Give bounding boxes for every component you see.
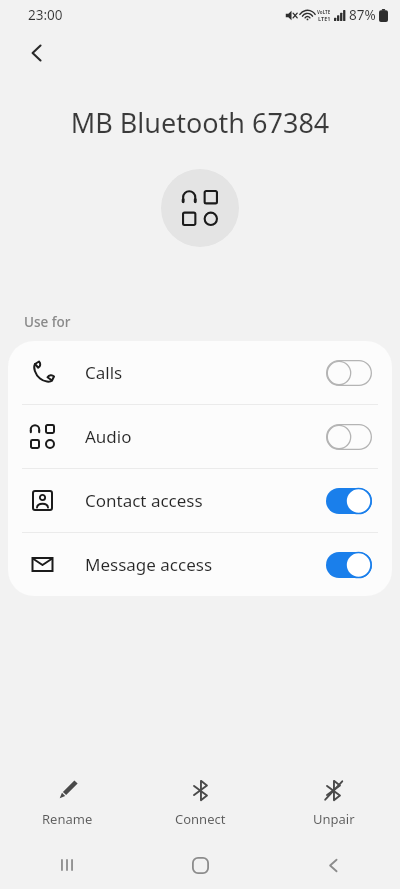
button[interactable]: Rename	[0, 773, 134, 834]
button[interactable]: Back	[267, 841, 400, 889]
button[interactable]: Connect	[134, 773, 267, 834]
staticText: Rename	[42, 810, 93, 828]
button[interactable]: On	[326, 552, 372, 578]
button[interactable]: Unpair	[267, 773, 400, 834]
staticText: Use for	[24, 313, 71, 331]
staticText: LTE1	[318, 15, 331, 22]
button[interactable]: Home	[134, 841, 267, 889]
staticText: VoLTE	[317, 9, 331, 15]
staticText: Calls	[85, 361, 326, 384]
staticText: Connect	[175, 810, 226, 828]
button[interactable]: Off	[326, 424, 372, 450]
staticText: MB Bluetooth 67384	[16, 104, 384, 141]
button[interactable]: Back	[14, 30, 60, 76]
staticText: Unpair	[313, 810, 355, 828]
button[interactable]: Contact access	[8, 469, 392, 532]
button[interactable]: Recents	[0, 841, 134, 889]
button[interactable]: Off	[326, 360, 372, 386]
button[interactable]: Message access	[8, 533, 392, 596]
staticText: 87%	[349, 6, 376, 24]
staticText: 23:00	[28, 6, 63, 24]
staticText: Audio	[85, 425, 326, 448]
staticText: Message access	[85, 553, 326, 576]
staticText: Contact access	[85, 489, 326, 512]
button[interactable]: Audio	[8, 405, 392, 468]
button[interactable]: Calls	[8, 341, 392, 404]
button[interactable]: On	[326, 488, 372, 514]
